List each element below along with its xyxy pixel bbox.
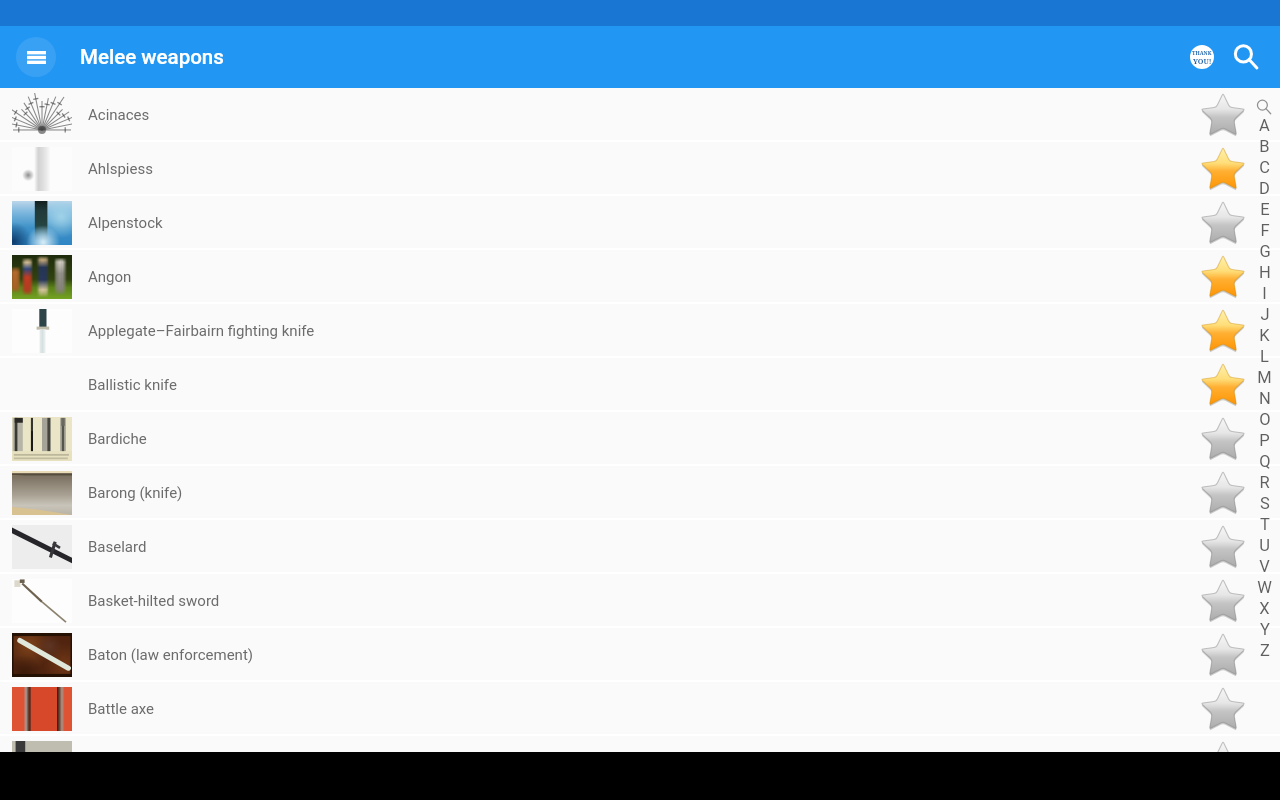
button[interactable]: Alpenstock	[0, 196, 1280, 250]
staticText: YOU!	[1193, 56, 1212, 66]
staticText: Acinaces	[88, 106, 150, 124]
staticText: S	[1260, 494, 1270, 513]
staticText: D	[1259, 179, 1270, 198]
button[interactable]: J	[1254, 304, 1275, 325]
button[interactable]: S	[1254, 493, 1275, 514]
button[interactable]: Favorite	[1198, 738, 1248, 752]
staticText: X	[1259, 599, 1270, 618]
button[interactable]: I	[1254, 283, 1275, 304]
button[interactable]: P	[1254, 430, 1275, 451]
button[interactable]: E	[1254, 199, 1275, 220]
staticText: P	[1259, 431, 1270, 450]
button[interactable]: Bayonet	[0, 736, 1280, 752]
button[interactable]: R	[1254, 472, 1275, 493]
button[interactable]: G	[1254, 241, 1275, 262]
staticText: G	[1259, 242, 1271, 261]
button[interactable]: Battle axe	[0, 682, 1280, 736]
button[interactable]: N	[1254, 388, 1275, 409]
staticText: W	[1257, 578, 1272, 597]
staticText: E	[1260, 200, 1270, 219]
button[interactable]: L	[1254, 346, 1275, 367]
staticText: Bardiche	[88, 430, 147, 448]
button[interactable]: Angon	[0, 250, 1280, 304]
button[interactable]: V	[1254, 556, 1275, 577]
staticText: L	[1260, 347, 1269, 366]
button[interactable]: K	[1254, 325, 1275, 346]
button[interactable]: X	[1254, 598, 1275, 619]
button[interactable]: U	[1254, 535, 1275, 556]
button[interactable]: O	[1254, 409, 1275, 430]
staticText: F	[1260, 221, 1270, 240]
button[interactable]: Open navigation menu	[16, 37, 56, 77]
staticText: Basket-hilted sword	[88, 592, 220, 610]
staticText: Alpenstock	[88, 214, 163, 232]
button[interactable]: Basket-hilted sword	[0, 574, 1280, 628]
button[interactable]: Bardiche	[0, 412, 1280, 466]
staticText: H	[1259, 263, 1271, 282]
staticText: Angon	[88, 268, 132, 286]
button[interactable]: Favorite	[1198, 306, 1248, 356]
button[interactable]: Q	[1254, 451, 1275, 472]
button[interactable]: Baselard	[0, 520, 1280, 574]
button[interactable]: Favorite	[1198, 144, 1248, 194]
button[interactable]: Favorite	[1198, 468, 1248, 518]
button[interactable]: Search	[1224, 35, 1268, 79]
staticText: I	[1262, 284, 1267, 303]
button[interactable]: A	[1254, 115, 1275, 136]
button[interactable]: Ahlspiess	[0, 142, 1280, 196]
button[interactable]: T	[1254, 514, 1275, 535]
staticText: Ahlspiess	[88, 160, 153, 178]
button[interactable]: B	[1254, 136, 1275, 157]
staticText: Baselard	[88, 538, 147, 556]
staticText: O	[1259, 410, 1271, 429]
button[interactable]: Favorite	[1198, 252, 1248, 302]
staticText: V	[1259, 557, 1270, 576]
staticText: Battle axe	[88, 700, 155, 718]
staticText: R	[1259, 473, 1270, 492]
button[interactable]: Favorite	[1198, 684, 1248, 734]
staticText: Q	[1259, 452, 1271, 471]
button[interactable]: C	[1254, 157, 1275, 178]
staticText: T	[1260, 515, 1270, 534]
button[interactable]: Baton (law enforcement)	[0, 628, 1280, 682]
button[interactable]: Search index	[1254, 98, 1275, 115]
staticText: U	[1259, 536, 1270, 555]
staticText: THANK	[1192, 49, 1212, 56]
button[interactable]: Favorite	[1198, 360, 1248, 410]
button[interactable]: Favorite	[1198, 576, 1248, 626]
button[interactable]: H	[1254, 262, 1275, 283]
staticText: Barong (knife)	[88, 484, 183, 502]
button[interactable]: Y	[1254, 619, 1275, 640]
button[interactable]: W	[1254, 577, 1275, 598]
button[interactable]: Barong (knife)	[0, 466, 1280, 520]
staticText: Ballistic knife	[88, 376, 177, 394]
button[interactable]: D	[1254, 178, 1275, 199]
button[interactable]: Favorite	[1198, 90, 1248, 140]
button[interactable]: Favorite	[1198, 198, 1248, 248]
staticText: Applegate–Fairbairn fighting knife	[88, 322, 315, 340]
staticText: Baton (law enforcement)	[88, 646, 254, 664]
button[interactable]: Z	[1254, 640, 1275, 661]
staticText: N	[1259, 389, 1271, 408]
button[interactable]: M	[1254, 367, 1275, 388]
button[interactable]: Acinaces	[0, 88, 1280, 142]
staticText: Y	[1260, 620, 1270, 639]
staticText: C	[1259, 158, 1270, 177]
staticText: A	[1259, 116, 1270, 135]
button[interactable]: Favorite	[1198, 522, 1248, 572]
staticText: Melee weapons	[80, 45, 224, 69]
button[interactable]: Ballistic knife	[0, 358, 1280, 412]
button[interactable]: Thank you	[1180, 35, 1224, 79]
staticText: B	[1259, 137, 1270, 156]
button[interactable]: Applegate–Fairbairn fighting knife	[0, 304, 1280, 358]
button[interactable]: F	[1254, 220, 1275, 241]
button[interactable]: Favorite	[1198, 630, 1248, 680]
staticText: M	[1257, 368, 1272, 387]
staticText: K	[1259, 326, 1270, 345]
staticText: Z	[1260, 641, 1270, 660]
button[interactable]: Favorite	[1198, 414, 1248, 464]
staticText: J	[1260, 305, 1270, 324]
